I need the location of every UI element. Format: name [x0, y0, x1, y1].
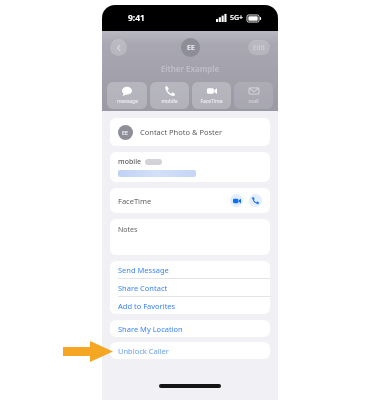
button[interactable]: Back — [110, 39, 127, 56]
button[interactable]: FaceTime audio — [249, 194, 262, 207]
button[interactable]: Add to Favorites — [110, 297, 270, 314]
staticText: Edit — [253, 43, 265, 52]
staticText: mobile — [118, 157, 142, 167]
button[interactable]: Send Message — [110, 261, 270, 278]
button[interactable]: Edit — [248, 40, 270, 55]
staticText: FaceTime — [200, 98, 223, 105]
staticText: 5G+ — [230, 13, 244, 23]
button[interactable]: message — [107, 82, 147, 109]
button[interactable]: Unblock Caller — [110, 342, 270, 359]
staticText: Share Contact — [118, 283, 168, 293]
staticText: mail — [248, 98, 259, 105]
button[interactable]: EE — [110, 118, 270, 146]
button[interactable]: FaceTime video — [230, 194, 243, 207]
button[interactable]: FaceTime — [192, 82, 231, 109]
button[interactable]: mobile — [110, 152, 270, 182]
staticText: Either Example — [102, 63, 278, 74]
staticText: Send Message — [118, 265, 169, 275]
staticText: Add to Favorites — [118, 301, 176, 311]
button[interactable]: mail — [234, 82, 273, 109]
staticText: 9:41 — [128, 12, 145, 24]
button[interactable]: mobile — [150, 82, 189, 109]
staticText: mobile — [161, 98, 178, 105]
staticText: EE — [122, 129, 129, 136]
button[interactable]: Notes — [110, 219, 270, 255]
button[interactable]: Share My Location — [110, 320, 270, 337]
staticText: Contact Photo & Poster — [140, 127, 223, 137]
staticText: Unblock Caller — [118, 346, 169, 356]
button[interactable]: Share Contact — [110, 279, 270, 296]
staticText: EE — [187, 43, 195, 53]
staticText: Notes — [118, 225, 138, 235]
staticText: message — [117, 98, 138, 105]
staticText: Share My Location — [118, 324, 183, 334]
staticText: FaceTime — [118, 196, 152, 206]
